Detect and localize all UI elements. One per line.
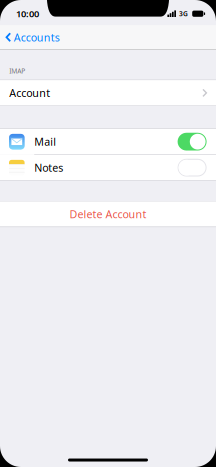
button[interactable]: Delete Account bbox=[0, 201, 216, 227]
staticText: Notes bbox=[34, 161, 63, 175]
button[interactable]: Notes bbox=[178, 159, 207, 177]
staticText: 10:00 bbox=[16, 7, 39, 20]
staticText: Accounts bbox=[14, 30, 60, 44]
button[interactable]: Accounts bbox=[0, 27, 60, 47]
staticText: Account bbox=[9, 86, 50, 100]
staticText: Mail bbox=[34, 135, 56, 149]
staticText: IMAP bbox=[9, 66, 25, 75]
button[interactable]: Account bbox=[0, 80, 216, 106]
staticText: Delete Account bbox=[69, 207, 146, 221]
button[interactable]: Mail bbox=[178, 133, 207, 151]
staticText: 3G bbox=[179, 9, 188, 18]
